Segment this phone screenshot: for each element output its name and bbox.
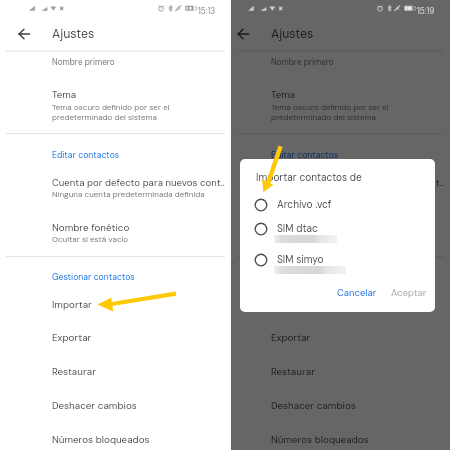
staticText: Archivo .vcf [277,198,332,211]
button[interactable]: Back [12,22,36,46]
staticText: SIM dtac [277,222,318,235]
staticText: Ninguna cuenta predeterminada definida [52,189,205,199]
staticText: predeterminado del sistema [271,112,376,122]
button[interactable]: Nombre fonético [0,217,231,249]
staticText: Tema oscuro definido por ser el [52,102,170,112]
button[interactable]: Exportar [0,321,231,354]
button[interactable]: Importar [231,288,450,321]
button[interactable]: Archivo .vcf [240,194,435,224]
staticText: 15:13 [198,6,216,17]
button[interactable]: Números bloqueados [231,423,450,450]
staticText: Editar contactos [52,149,120,160]
button[interactable]: Gestionar contactos [231,267,450,285]
button[interactable]: Editar contactos [231,145,450,163]
staticText: Ajustes [52,26,95,42]
staticText: Cuenta por defecto para nuevos cont.. [271,176,444,188]
staticText: Nombre primero [271,57,334,68]
staticText: Tema oscuro definido por ser el [271,102,389,112]
button[interactable]: Nombre primero [231,53,450,72]
staticText: Gestionar contactos [271,271,354,282]
staticText: Deshacer cambios [271,399,356,412]
staticText: Restaurar [52,365,96,378]
staticText: Gestionar contactos [52,271,135,282]
button[interactable]: Cuenta por defecto para nuevos cont.. [0,172,231,204]
staticText: Nombre fonético [52,221,130,234]
button[interactable]: Back [231,22,255,46]
staticText: Exportar [52,331,92,344]
button[interactable]: SIM simyo [240,249,435,279]
button[interactable]: Cancelar [332,284,382,302]
staticText: Tema [52,88,77,101]
button[interactable]: SIM dtac [240,218,435,248]
staticText: Ajustes [271,26,314,42]
staticText: Exportar [271,331,311,344]
staticText: Importar contactos de [256,171,362,184]
button[interactable]: Gestionar contactos [0,267,231,285]
staticText: Números bloqueados [52,433,150,446]
staticText: Ocultar si está vacío [271,234,348,244]
staticText: Nombre primero [52,57,115,68]
staticText: Importar [52,298,92,311]
button[interactable]: Deshacer cambios [231,389,450,422]
button[interactable]: Restaurar [0,355,231,388]
button[interactable]: Aceptar [386,284,432,302]
button[interactable]: Restaurar [231,355,450,388]
button[interactable]: Cuenta por defecto para nuevos cont.. [231,172,450,204]
button[interactable]: Nombre primero [0,53,231,72]
button[interactable]: Exportar [231,321,450,354]
staticText: Aceptar [391,287,427,299]
staticText: Restaurar [271,365,315,378]
button[interactable]: Números bloqueados [0,423,231,450]
button[interactable]: Editar contactos [0,145,231,163]
staticText: Cancelar [337,287,377,299]
staticText: Números bloqueados [271,433,369,446]
staticText: Editar contactos [271,149,339,160]
staticText: predeterminado del sistema [52,112,157,122]
staticText: Deshacer cambios [52,399,137,412]
staticText: Tema [271,88,296,101]
staticText: Nombre fonético [271,221,349,234]
staticText: SIM simyo [277,253,324,266]
staticText: Ocultar si está vacío [52,234,129,244]
staticText: 15:19 [417,6,435,17]
button[interactable]: Nombre fonético [231,217,450,249]
staticText: Cuenta por defecto para nuevos cont.. [52,176,225,188]
button[interactable]: Importar [0,288,231,321]
button[interactable]: Tema [0,84,231,126]
button[interactable]: Deshacer cambios [0,389,231,422]
button[interactable]: Tema [231,84,450,126]
